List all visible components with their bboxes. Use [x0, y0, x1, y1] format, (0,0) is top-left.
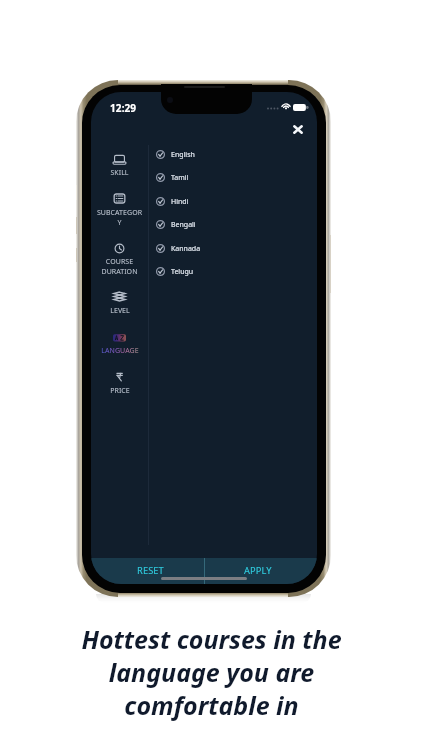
- button[interactable]: RESET: [91, 558, 204, 584]
- staticText: RESET: [137, 564, 164, 577]
- staticText: Bengali: [171, 220, 196, 230]
- staticText: 12:29: [110, 101, 137, 115]
- button[interactable]: [91, 148, 148, 182]
- button[interactable]: Close: [286, 118, 309, 141]
- button[interactable]: English: [149, 143, 317, 166]
- staticText: LEVEL: [110, 306, 130, 316]
- staticText: English: [171, 150, 195, 160]
- button[interactable]: Tamil: [149, 166, 317, 189]
- staticText: Telugu: [171, 267, 194, 277]
- staticText: Hottest courses in the language you are …: [81, 622, 342, 722]
- button[interactable]: [91, 187, 148, 221]
- staticText: COURSE DURATION: [96, 257, 143, 276]
- button[interactable]: Telugu: [149, 260, 317, 283]
- staticText: Kannada: [171, 244, 201, 254]
- button[interactable]: Kannada: [149, 237, 317, 260]
- button[interactable]: [91, 327, 148, 361]
- staticText: Tamil: [171, 173, 189, 183]
- button[interactable]: APPLY: [204, 558, 317, 584]
- staticText: Hindi: [171, 197, 189, 207]
- button[interactable]: Bengali: [149, 213, 317, 236]
- staticText: PRICE: [110, 386, 130, 396]
- button[interactable]: Hindi: [149, 190, 317, 213]
- button[interactable]: [91, 237, 148, 271]
- staticText: LANGUAGE: [101, 346, 139, 356]
- button[interactable]: [91, 366, 148, 400]
- staticText: SKILL: [110, 168, 129, 178]
- button[interactable]: [91, 285, 148, 319]
- staticText: APPLY: [244, 564, 272, 577]
- staticText: SUBCATEGORY: [96, 208, 143, 227]
